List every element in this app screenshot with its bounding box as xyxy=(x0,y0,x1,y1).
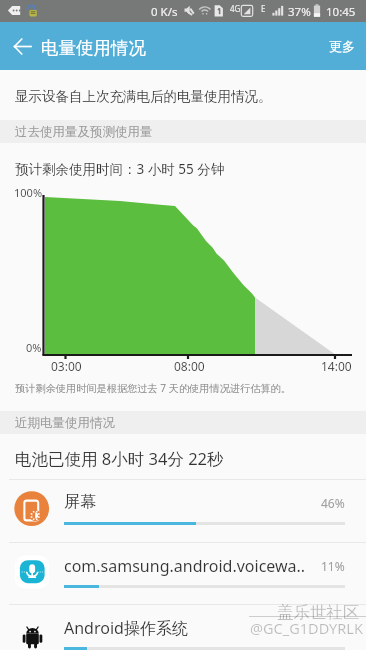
staticText: 46% xyxy=(321,495,345,511)
staticText: @GC_G1DDYRLK xyxy=(250,618,363,638)
staticText: 03:00 xyxy=(51,358,82,374)
staticText: Android操作系统 xyxy=(64,617,188,639)
staticText: 电池已使用 8小时 34分 22秒 xyxy=(15,447,224,470)
staticText: com.samsung.android.voicewa.. xyxy=(64,555,306,577)
staticText: 0% xyxy=(26,340,42,355)
button[interactable]: Back xyxy=(0,22,44,70)
staticText: 11% xyxy=(321,558,345,574)
staticText: 预计剩余使用时间是根据您过去 7 天的使用情况进行估算的。 xyxy=(15,381,291,395)
staticText: 37% xyxy=(288,4,311,20)
staticText: 14:00 xyxy=(321,358,352,374)
staticText: 近期电量使用情况 xyxy=(15,415,115,431)
staticText: 更多 xyxy=(329,38,355,54)
button[interactable]: com.samsung.android.voicewa.. xyxy=(0,543,366,605)
button[interactable]: 屏幕 xyxy=(0,480,366,542)
staticText: 4G xyxy=(230,3,241,14)
staticText: 显示设备自上次充满电后的电量使用情况。 xyxy=(15,88,272,105)
staticText: E xyxy=(261,3,266,14)
button[interactable]: Android操作系统 xyxy=(0,605,366,650)
staticText: 08:00 xyxy=(174,358,205,374)
staticText: 预计剩余使用时间：3 小时 55 分钟 xyxy=(15,160,225,178)
staticText: 过去使用量及预测使用量 xyxy=(15,124,153,140)
staticText: 屏幕 xyxy=(64,492,96,512)
button[interactable]: 更多 xyxy=(318,22,366,70)
staticText: 10:45 xyxy=(326,4,356,20)
staticText: 0 K/s xyxy=(151,4,178,20)
staticText: 盖乐世社区 xyxy=(277,602,360,623)
staticText: 100% xyxy=(14,185,43,200)
staticText: 电量使用情况 xyxy=(41,37,146,59)
